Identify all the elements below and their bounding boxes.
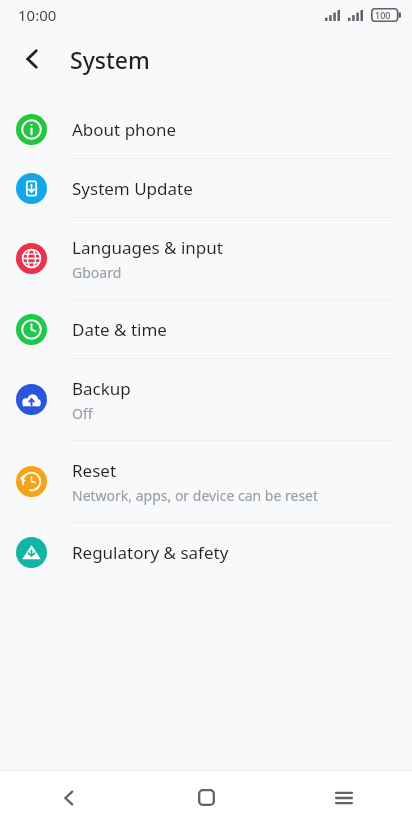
other: Regulatory (16, 537, 47, 568)
other: About phone (16, 114, 47, 145)
staticText: Network, apps, or device can be reset (72, 486, 319, 505)
button[interactable]: Back (0, 771, 138, 824)
other: Reset (16, 466, 47, 497)
button[interactable]: Languages (0, 218, 412, 299)
button[interactable]: About phone (0, 100, 412, 158)
staticText: Off (72, 404, 93, 423)
staticText: Gboard (72, 263, 122, 282)
staticText: Date & time (72, 318, 167, 341)
staticText: System Update (72, 177, 193, 200)
other: Backup (16, 384, 47, 415)
staticText: 10:00 (18, 5, 57, 25)
other: Date and time (16, 314, 47, 345)
button[interactable]: Recent apps (275, 771, 412, 824)
other: Languages (16, 243, 47, 274)
staticText: About phone (72, 118, 177, 141)
button[interactable]: Back (10, 37, 54, 81)
staticText: Regulatory & safety (72, 541, 229, 564)
staticText: System (70, 44, 150, 75)
staticText: Languages & input (72, 236, 223, 259)
staticText: Backup (72, 377, 131, 400)
other: System Update (16, 173, 47, 204)
staticText: Reset (72, 459, 117, 482)
button[interactable]: System Update (0, 159, 412, 217)
button[interactable]: Home (138, 771, 275, 824)
button[interactable]: Regulatory (0, 523, 412, 581)
button[interactable]: Reset (0, 441, 412, 522)
staticText: 100 (375, 9, 391, 21)
button[interactable]: Backup (0, 359, 412, 440)
button[interactable]: Date and time (0, 300, 412, 358)
